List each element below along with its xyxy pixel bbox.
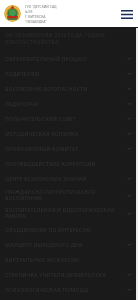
button[interactable]: Menu [120,7,134,21]
staticText: РОДИТЕЛЯМ [5,70,124,77]
button[interactable]: МЕТОДИЧЕСКАЯ КОПИЛКА [0,126,138,141]
button[interactable]: ПСИХОЛОГИЧЕСКАЯ ПОМОЩЬ [0,282,138,297]
button[interactable]: ОБРАЗОВАТЕЛЬНЫЙ ПРОЦЕСС [0,51,138,66]
button[interactable]: ВОСПИТАТЕЛЬНАЯ И ИДЕОЛОГИЧЕСКАЯ РАБОТА [0,204,138,222]
staticText: ПРОФСОЮЗНЫЙ КОМИТЕТ [5,145,124,152]
staticText: ПОПЕЧИТЕЛЬСКИЙ СОВЕТ [5,115,124,122]
button[interactable]: СТРАНИЧКА УЧИТЕЛЯ-ДЕФЕКТОЛОГА [0,267,138,282]
staticText: "НЕЗАБУДКА" [25,19,47,24]
staticText: ГРАЖДАНСКО-ПАТРИОТИЧЕСКОЕ ВОСПИТАНИЕ [5,188,124,202]
button[interactable]: ОБ ОБЪЯВЛЕНИИ 2026 ГОДА ГОДОМ БЛАГОУСТРО… [0,31,138,45]
staticText: МАРШРУТ ВЫХОДНОГО ДНЯ [5,241,124,248]
staticText: ВИРТУАЛЬНЫЕ ЭКСКУРСИИ [5,256,124,263]
staticText: №93 [25,9,33,14]
button[interactable]: ВИРТУАЛЬНЫЕ ЭКСКУРСИИ [0,252,138,267]
staticText: Г. ВИТЕБСКА [25,14,46,19]
staticText: ЦЕНТР БЕЗОПАСНЫХ ЗНАНИЙ [5,175,124,182]
staticText: ПСИХОЛОГИЧЕСКАЯ ПОМОЩЬ [5,286,124,293]
staticText: ГУО "ДЕТСКИЙ САД [25,4,57,9]
staticText: ПРОТИВОДЕЙСТВИЕ КОРРУПЦИИ [5,160,124,167]
button[interactable]: ПРОТИВОДЕЙСТВИЕ КОРРУПЦИИ [0,156,138,171]
button[interactable]: МАРШРУТ ВЫХОДНОГО ДНЯ [0,237,138,252]
button[interactable]: ПРОФСОЮЗНЫЙ КОМИТЕТ [0,141,138,156]
staticText: ОБЪЕДИНЕНИЯ ПО ИНТЕРЕСАМ [5,226,124,233]
button[interactable]: ОБЪЕДИНЕНИЯ ПО ИНТЕРЕСАМ [0,222,138,237]
staticText: ОБРАЗОВАТЕЛЬНЫЙ ПРОЦЕСС [5,55,124,62]
staticText: ВОСПИТАТЕЛЬНАЯ И ИДЕОЛОГИЧЕСКАЯ РАБОТА [5,206,124,220]
staticText: ВОСПИТАНИЕ БЕЗОПАСНОСТИ [5,85,124,92]
staticText: СТРАНИЧКА УЧИТЕЛЯ-ДЕФЕКТОЛОГА [5,271,124,278]
button[interactable]: ПЕДАГОГАМ [0,96,138,111]
button[interactable]: ВОСПИТАНИЕ БЕЗОПАСНОСТИ [0,81,138,96]
button[interactable]: ГРАЖДАНСКО-ПАТРИОТИЧЕСКОЕ ВОСПИТАНИЕ [0,186,138,204]
button[interactable]: РОДИТЕЛЯМ [0,66,138,81]
button[interactable]: ПОПЕЧИТЕЛЬСКИЙ СОВЕТ [0,111,138,126]
staticText: МЕТОДИЧЕСКАЯ КОПИЛКА [5,130,124,137]
button[interactable]: ЦЕНТР БЕЗОПАСНЫХ ЗНАНИЙ [0,171,138,186]
